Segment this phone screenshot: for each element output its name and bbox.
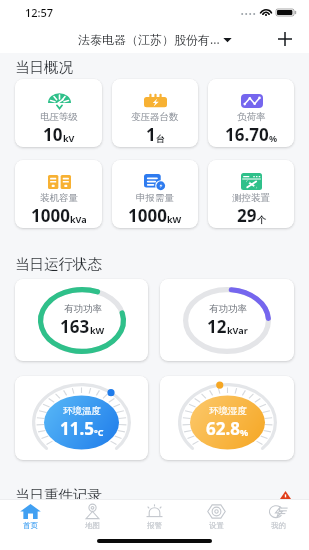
staticText: 设置 [209, 521, 224, 530]
staticText: 1000 [31, 204, 70, 227]
staticText: 11.5 [60, 417, 94, 440]
staticText: 地图 [85, 521, 100, 530]
button[interactable]: 装机容量 [15, 160, 102, 228]
staticText: kV [63, 132, 75, 144]
staticText: 16.70 [225, 123, 269, 146]
staticText: 申报需量 [136, 192, 174, 204]
button[interactable]: 我的 [247, 501, 309, 531]
staticText: 首页 [23, 521, 38, 530]
button[interactable]: Add [272, 26, 298, 52]
staticText: °C [94, 426, 104, 438]
staticText: 10 [43, 123, 63, 146]
button[interactable]: 设置 [185, 501, 247, 531]
staticText: 1 [146, 123, 156, 146]
staticText: 62.8 [206, 417, 240, 440]
staticText: 我的 [271, 521, 286, 530]
button[interactable]: 首页 [0, 501, 61, 531]
staticText: 1000 [128, 204, 167, 227]
button[interactable]: 报警 [123, 501, 185, 531]
staticText: kVar [227, 324, 248, 336]
staticText: 当日重件记录 [15, 486, 102, 499]
staticText: 负荷率 [237, 111, 266, 123]
staticText: 12:57 [25, 5, 54, 20]
button[interactable]: Alarm [280, 491, 291, 499]
button[interactable]: 负荷率 [208, 79, 294, 147]
staticText: kW [167, 213, 182, 225]
button[interactable]: 电压等级 [15, 79, 102, 147]
button[interactable]: 环境湿度 [160, 376, 294, 460]
staticText: 29 [237, 204, 257, 227]
staticText: % [240, 426, 249, 438]
button[interactable]: 测控装置 [208, 160, 294, 228]
staticText: 当日运行状态 [15, 255, 102, 273]
button[interactable]: 申报需量 [112, 160, 198, 228]
staticText: 有功功率 [209, 303, 247, 315]
button[interactable]: 环境温度 [15, 376, 148, 460]
staticText: kW [90, 324, 105, 336]
staticText: 163 [60, 315, 90, 338]
staticText: 环境湿度 [209, 405, 247, 417]
staticText: 当日概况 [15, 58, 73, 76]
button[interactable]: 变压器台数 [112, 79, 198, 147]
button[interactable]: 地图 [61, 501, 123, 531]
staticText: kVa [70, 213, 87, 225]
staticText: 台 [156, 133, 165, 144]
staticText: 电压等级 [40, 111, 78, 123]
staticText: 个 [257, 214, 266, 225]
staticText: 法泰电器（江苏）股份有... [78, 31, 220, 47]
button[interactable]: 有功功率 [160, 279, 294, 361]
staticText: 报警 [147, 521, 162, 530]
staticText: 环境温度 [63, 405, 101, 417]
staticText: % [269, 132, 278, 144]
staticText: 测控装置 [232, 192, 270, 204]
staticText: 变压器台数 [131, 111, 179, 123]
staticText: 有功功率 [64, 303, 102, 315]
staticText: 装机容量 [40, 192, 78, 204]
button[interactable]: 有功功率 [15, 279, 148, 361]
button[interactable]: 法泰电器（江苏）股份有... [78, 31, 232, 47]
staticText: 12 [207, 315, 227, 338]
